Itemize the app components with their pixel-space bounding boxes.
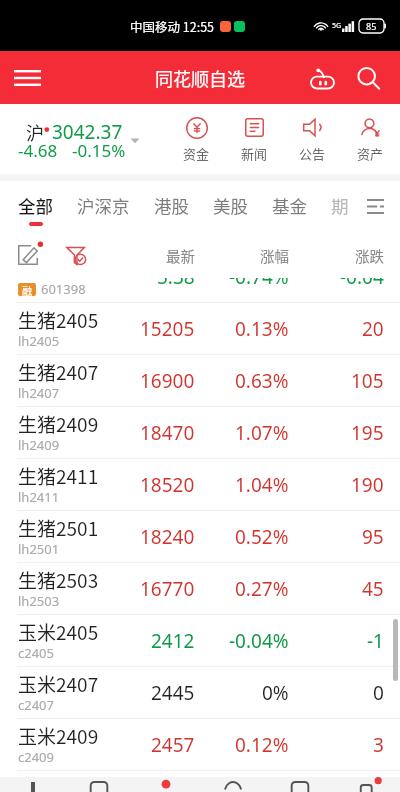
staticText: 0.13% bbox=[235, 316, 289, 342]
staticText: 0.63% bbox=[235, 368, 289, 394]
staticText: 新闻 bbox=[241, 144, 268, 163]
staticText: 港股 bbox=[154, 193, 189, 218]
staticText: lh2501 bbox=[18, 540, 60, 558]
staticText: 工商银行 bbox=[18, 254, 95, 282]
button[interactable]: 资金 bbox=[167, 114, 225, 165]
staticText: lh2405 bbox=[18, 332, 60, 350]
staticText: 0% bbox=[262, 680, 289, 706]
button[interactable]: 生猪2503 bbox=[0, 563, 400, 615]
button[interactable]: 资产 bbox=[341, 114, 399, 165]
staticText: c2407 bbox=[18, 696, 54, 714]
staticText: 生猪2411 bbox=[18, 462, 99, 490]
staticText: 涨跌 bbox=[355, 245, 384, 266]
staticText: 期 bbox=[331, 193, 349, 218]
staticText: 资金 bbox=[183, 144, 210, 163]
button[interactable]: News bbox=[266, 777, 333, 792]
button[interactable]: 涨跌 bbox=[289, 235, 384, 275]
staticText: 基金 bbox=[272, 193, 307, 218]
button[interactable]: 全部 bbox=[18, 181, 53, 226]
button[interactable]: 沪深京 bbox=[77, 181, 130, 222]
button[interactable]: 生猪2409 bbox=[0, 407, 400, 459]
staticText: 沪深京 bbox=[77, 193, 130, 218]
staticText: 生猪2409 bbox=[18, 410, 99, 438]
staticText: c2405 bbox=[18, 644, 54, 662]
button[interactable]: 期 bbox=[331, 181, 349, 222]
button[interactable]: Menu bbox=[6, 57, 48, 99]
button[interactable]: Profile bbox=[333, 777, 400, 792]
button[interactable]: 美股 bbox=[213, 181, 248, 222]
staticText: 生猪2503 bbox=[18, 566, 99, 594]
staticText: 1.04% bbox=[235, 472, 289, 498]
button[interactable]: 最新 bbox=[129, 235, 195, 275]
staticText: 中国移动 12:55 bbox=[130, 17, 215, 35]
staticText: 资产 bbox=[357, 144, 384, 163]
staticText: -0.74% bbox=[229, 264, 289, 290]
button[interactable]: Discover bbox=[199, 777, 266, 792]
staticText: 融 bbox=[22, 283, 32, 296]
button[interactable]: 基金 bbox=[272, 181, 307, 222]
staticText: 16900 bbox=[140, 368, 195, 394]
staticText: 601398 bbox=[41, 280, 86, 298]
button[interactable]: 玉米2409 bbox=[0, 719, 400, 771]
staticText: 2412 bbox=[151, 628, 195, 654]
staticText: 玉米2409 bbox=[18, 722, 99, 750]
staticText: -1 bbox=[367, 628, 384, 654]
staticText: -0.04 bbox=[340, 264, 384, 290]
staticText: 最新 bbox=[166, 245, 195, 266]
staticText: 0.52% bbox=[235, 524, 289, 550]
staticText: 涨幅 bbox=[260, 245, 289, 266]
staticText: lh2409 bbox=[18, 436, 60, 454]
staticText: 1.07% bbox=[235, 420, 289, 446]
button[interactable]: Filter bbox=[63, 242, 89, 268]
button[interactable]: 生猪2405 bbox=[0, 303, 400, 355]
staticText: 18470 bbox=[140, 420, 195, 446]
staticText: 0.12% bbox=[235, 732, 289, 758]
button[interactable]: 玉米2405 bbox=[0, 615, 400, 667]
button[interactable]: Home bbox=[0, 777, 66, 792]
staticText: 玉米2407 bbox=[18, 670, 99, 698]
button[interactable]: 工商银行 bbox=[0, 251, 400, 303]
staticText: 3 bbox=[373, 732, 384, 758]
staticText: c2409 bbox=[18, 748, 54, 766]
staticText: -0.04% bbox=[229, 628, 289, 654]
staticText: 美股 bbox=[213, 193, 248, 218]
staticText: -4.68 bbox=[18, 139, 58, 162]
button[interactable]: All categories bbox=[360, 191, 390, 221]
staticText: 3042.37 bbox=[52, 119, 123, 145]
button[interactable]: Search bbox=[353, 63, 383, 93]
staticText: 18520 bbox=[140, 472, 195, 498]
button[interactable]: Edit list bbox=[15, 242, 41, 268]
staticText: lh2503 bbox=[18, 592, 60, 610]
button[interactable]: 生猪2411 bbox=[0, 459, 400, 511]
staticText: 全部 bbox=[18, 193, 53, 218]
staticText: 2457 bbox=[151, 732, 195, 758]
button[interactable]: 沪 bbox=[0, 113, 140, 165]
staticText: 0.27% bbox=[235, 576, 289, 602]
staticText: 5G bbox=[332, 21, 342, 31]
staticText: lh2411 bbox=[18, 488, 60, 506]
staticText: 15205 bbox=[140, 316, 195, 342]
staticText: 195 bbox=[351, 420, 384, 446]
button[interactable]: 生猪2501 bbox=[0, 511, 400, 563]
staticText: 生猪2407 bbox=[18, 358, 99, 386]
button[interactable]: 涨幅 bbox=[195, 235, 289, 275]
staticText: 沪 bbox=[26, 119, 44, 145]
button[interactable]: AI assistant bbox=[304, 60, 340, 96]
button[interactable]: 港股 bbox=[154, 181, 189, 222]
staticText: 生猪2501 bbox=[18, 514, 99, 542]
button[interactable]: 公告 bbox=[283, 114, 341, 165]
button[interactable]: Markets bbox=[66, 777, 132, 792]
staticText: 5.38 bbox=[157, 264, 195, 290]
staticText: 2445 bbox=[151, 680, 195, 706]
button[interactable]: 生猪2407 bbox=[0, 355, 400, 407]
staticText: 18240 bbox=[140, 524, 195, 550]
staticText: 0 bbox=[373, 680, 384, 706]
staticText: 20 bbox=[362, 316, 384, 342]
staticText: 45 bbox=[362, 576, 384, 602]
staticText: lh2407 bbox=[18, 384, 60, 402]
button[interactable]: 新闻 bbox=[225, 114, 283, 165]
staticText: -0.15% bbox=[72, 139, 126, 162]
button[interactable]: 玉米2407 bbox=[0, 667, 400, 719]
staticText: 190 bbox=[351, 472, 384, 498]
button[interactable]: Trade bbox=[132, 777, 199, 792]
